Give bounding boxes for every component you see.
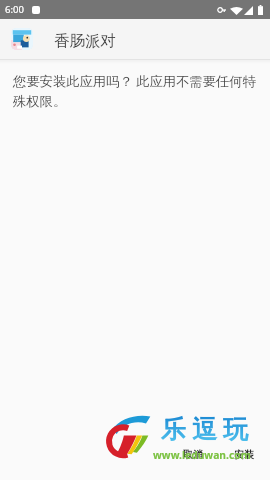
other: VPN active [217, 7, 226, 13]
staticText: 您要安装此应用吗？ 此应用不需要任何特殊权限。 [13, 72, 262, 110]
staticText: 取消 [183, 448, 203, 461]
other: Battery [258, 5, 263, 15]
button[interactable]: 取消 [180, 446, 206, 463]
button[interactable]: 安装 [231, 446, 257, 463]
other: Mobile signal [244, 6, 253, 15]
staticText: 6:00 [5, 3, 24, 16]
other: Wi-Fi [230, 6, 243, 15]
staticText: 安装 [234, 448, 254, 461]
staticText: www.leduwan.com [153, 448, 251, 462]
staticText: 香肠派对 [54, 31, 116, 51]
staticText: 乐逗玩 [158, 414, 251, 445]
